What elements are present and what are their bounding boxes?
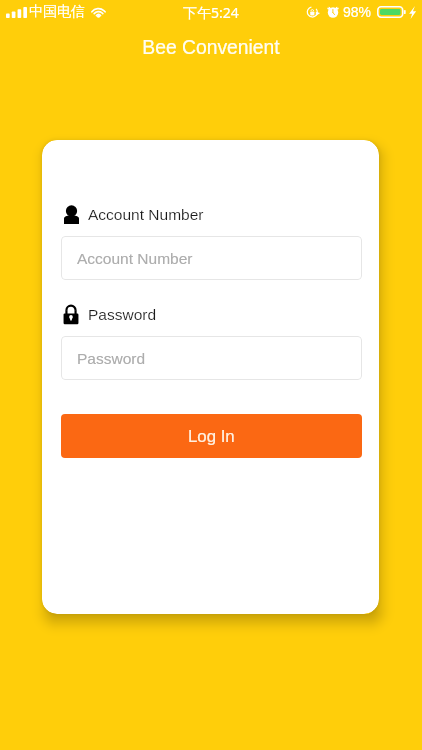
staticText: Bee Convenient — [142, 37, 280, 59]
staticText: Password — [88, 306, 157, 323]
staticText: Account Number — [88, 206, 204, 223]
button[interactable]: Password — [61, 336, 362, 380]
other: Rotation lock — [307, 6, 320, 18]
staticText: Account Number — [77, 250, 193, 267]
staticText: 中国电信 — [29, 3, 85, 21]
other: Alarm — [327, 6, 339, 18]
staticText: 下午5:24 — [183, 3, 239, 22]
staticText: 98% — [343, 4, 372, 20]
staticText: Log In — [188, 427, 235, 446]
staticText: Password — [77, 350, 146, 367]
button[interactable]: Log In — [61, 414, 362, 458]
button[interactable]: Account Number — [61, 236, 362, 280]
